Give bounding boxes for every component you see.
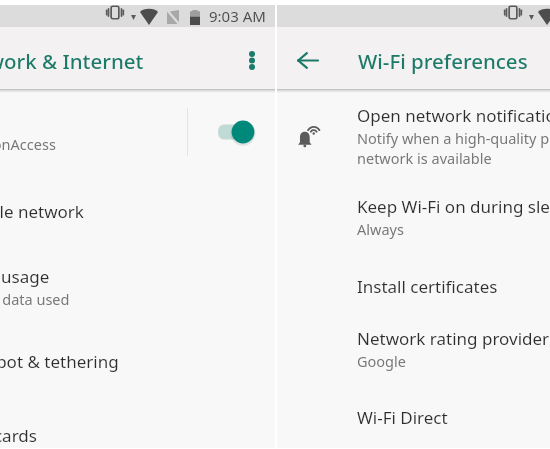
staticText: Data usage	[0, 265, 50, 288]
button[interactable]: More options	[244, 46, 259, 70]
staticText: Wi-Fi Direct	[357, 406, 448, 429]
staticText: Always	[357, 219, 404, 239]
staticText: Hotspot & tethering	[0, 350, 119, 373]
staticText: Wi-Fi preferences	[358, 47, 528, 75]
button[interactable]: Open network notification	[277, 97, 550, 171]
staticText: Network & Internet	[0, 47, 144, 75]
staticText: Keep Wi-Fi on during slee	[357, 195, 550, 218]
staticText: Mobile network	[0, 200, 84, 223]
staticText: Network rating provider	[357, 327, 550, 350]
staticText: network is available	[357, 148, 492, 168]
button[interactable]: Mobile network	[0, 193, 275, 229]
button[interactable]: SIM cards	[0, 417, 275, 449]
staticText: GuestConnectionAccess	[0, 134, 56, 154]
button[interactable]: Back	[292, 44, 326, 78]
button[interactable]: Keep Wi-Fi on during slee	[277, 188, 550, 242]
button[interactable]: Hotspot & tethering	[0, 343, 275, 379]
button[interactable]: Wi-Fi Direct	[277, 399, 550, 432]
staticText: SIM cards	[0, 424, 37, 447]
staticText: Google	[357, 351, 406, 371]
staticText: Install certificates	[357, 275, 498, 298]
staticText: Open network notification	[357, 104, 550, 127]
button[interactable]: Network rating provider	[277, 320, 550, 374]
staticText: Notify when a high-quality pu	[357, 128, 550, 148]
staticText: 9:03 AM	[209, 6, 266, 26]
button[interactable]: Install certificates	[277, 268, 550, 301]
button[interactable]: Data usage	[0, 258, 275, 308]
button[interactable]: GuestConnectionAccess	[0, 107, 275, 157]
staticText: Mobile data used	[0, 289, 70, 309]
